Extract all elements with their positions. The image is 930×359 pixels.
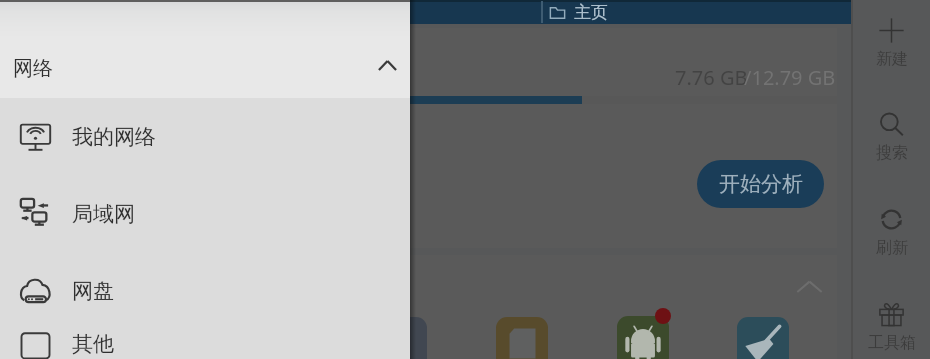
staticText: 网络: [13, 56, 53, 81]
staticText: 局域网: [72, 201, 135, 227]
other: Collapse: [796, 273, 823, 300]
staticText: 我的网络: [72, 124, 156, 150]
button[interactable]: 开始分析: [697, 160, 824, 208]
staticText: 开始分析: [719, 171, 803, 197]
button[interactable]: 网络: [0, 38, 410, 98]
button[interactable]: 工具箱: [853, 301, 930, 359]
button[interactable]: [737, 317, 789, 359]
staticText: /12.79 GB: [744, 64, 836, 91]
staticText: 其他: [72, 331, 114, 357]
staticText: 7.76 GB: [675, 64, 748, 91]
button[interactable]: 网盘: [0, 252, 410, 329]
staticText: 主页: [574, 2, 608, 23]
other: Collapse 网络: [378, 56, 397, 75]
button[interactable]: [375, 317, 427, 359]
button[interactable]: 新建: [853, 17, 930, 87]
staticText: 工具箱: [868, 333, 916, 353]
button[interactable]: 局域网: [0, 175, 410, 252]
button[interactable]: 库: [0, 0, 410, 38]
button[interactable]: 我的网络: [0, 98, 410, 175]
button[interactable]: 刷新: [853, 206, 930, 276]
staticText: 搜索: [876, 143, 908, 163]
staticText: 网盘: [72, 278, 114, 304]
button[interactable]: [496, 317, 548, 359]
staticText: 新建: [876, 49, 908, 69]
button[interactable]: 搜索: [853, 111, 930, 181]
button[interactable]: [617, 316, 669, 359]
staticText: 刷新: [876, 238, 908, 258]
button[interactable]: 其他: [0, 329, 410, 359]
staticText: 库: [11, 0, 30, 5]
